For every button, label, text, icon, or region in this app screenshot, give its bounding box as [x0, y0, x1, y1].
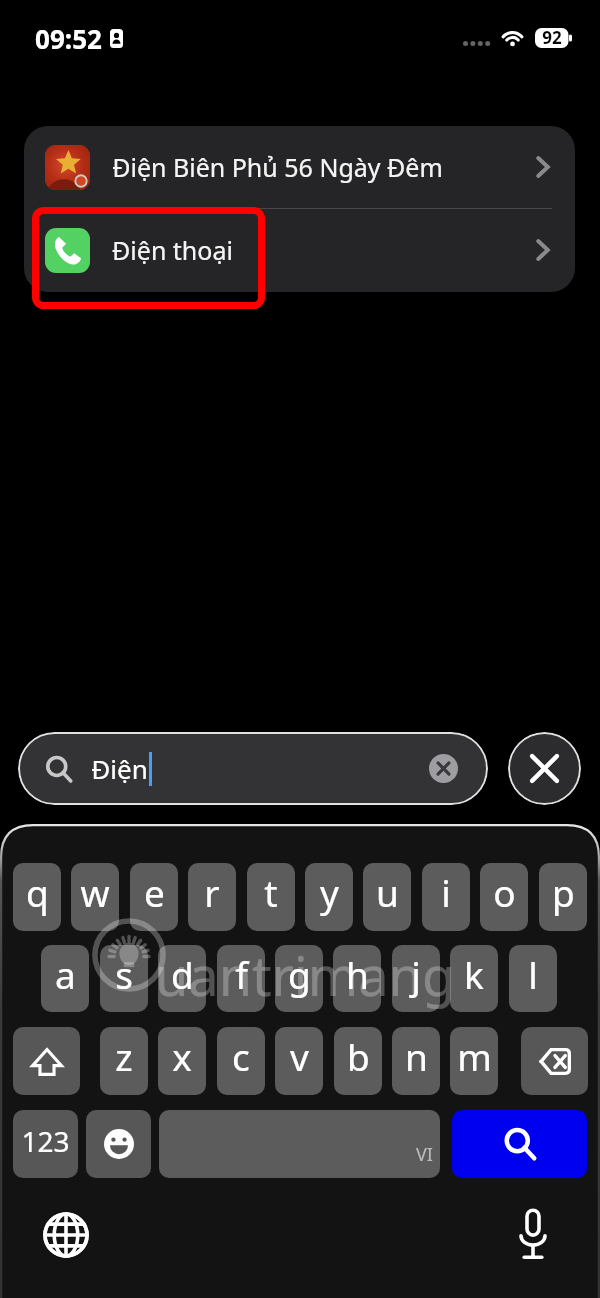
button[interactable]: s — [100, 945, 148, 1012]
button[interactable]: Emoji — [86, 1110, 151, 1178]
button[interactable]: q — [13, 863, 61, 931]
staticText: uantrimang — [155, 938, 456, 1012]
staticText: z — [115, 1031, 133, 1081]
staticText: r — [204, 867, 220, 917]
button[interactable]: Change language — [43, 1212, 89, 1258]
other: Backspace — [539, 1048, 571, 1075]
button[interactable]: Search — [452, 1110, 587, 1178]
button[interactable]: j — [392, 945, 440, 1012]
button[interactable]: k — [450, 945, 498, 1012]
staticText: l — [528, 949, 538, 999]
button[interactable]: x — [158, 1027, 206, 1095]
button[interactable]: Voice input — [513, 1207, 553, 1261]
button[interactable]: z — [100, 1027, 148, 1095]
staticText: g — [288, 949, 311, 999]
button[interactable]: a — [41, 945, 89, 1012]
staticText: k — [464, 949, 484, 999]
button[interactable]: Điện Biên Phủ 56 Ngày Đêm — [24, 126, 575, 208]
button[interactable]: 123 — [13, 1110, 78, 1178]
staticText: d — [171, 949, 194, 999]
button[interactable]: c — [217, 1027, 265, 1095]
button[interactable]: n — [392, 1027, 440, 1095]
button[interactable]: i — [422, 863, 470, 931]
staticText: x — [172, 1031, 192, 1081]
button[interactable]: l — [509, 945, 557, 1012]
button[interactable]: f — [217, 945, 265, 1012]
staticText: p — [552, 867, 575, 917]
other: Emoji — [104, 1129, 134, 1159]
staticText: u — [376, 867, 399, 917]
button[interactable]: Close search — [508, 732, 581, 805]
staticText: s — [115, 949, 133, 999]
button[interactable]: Space — [159, 1110, 440, 1178]
button[interactable]: h — [333, 945, 381, 1012]
button[interactable]: Điện — [18, 732, 488, 805]
staticText: VI — [416, 1142, 433, 1167]
button[interactable]: b — [334, 1027, 382, 1095]
staticText: m — [457, 1031, 492, 1081]
staticText: c — [232, 1031, 250, 1081]
button[interactable]: v — [275, 1027, 323, 1095]
button[interactable]: y — [305, 863, 353, 931]
staticText: 09:52 — [35, 21, 102, 56]
button[interactable]: o — [480, 863, 528, 931]
button[interactable]: t — [247, 863, 295, 931]
staticText: e — [144, 867, 165, 917]
staticText: b — [347, 1031, 370, 1081]
staticText: 92 — [542, 26, 562, 49]
staticText: i — [441, 867, 451, 917]
button[interactable]: Điện thoại — [24, 209, 575, 291]
button[interactable]: g — [275, 945, 323, 1012]
button[interactable]: r — [188, 863, 236, 931]
button[interactable]: Shift — [13, 1027, 80, 1095]
staticText: f — [235, 949, 248, 999]
button[interactable]: w — [71, 863, 119, 931]
staticText: Điện Biên Phủ 56 Ngày Đêm — [112, 150, 443, 184]
staticText: 123 — [21, 1122, 70, 1160]
staticText: q — [26, 867, 49, 917]
staticText: Điện — [91, 751, 148, 786]
button[interactable]: e — [130, 863, 178, 931]
staticText: h — [346, 949, 369, 999]
staticText: y — [320, 867, 339, 917]
staticText: Điện thoại — [112, 233, 233, 267]
button[interactable]: p — [539, 863, 587, 931]
staticText: j — [411, 949, 421, 999]
staticText: t — [264, 867, 278, 917]
staticText: w — [80, 867, 110, 917]
staticText: o — [493, 867, 516, 917]
other: Shift — [31, 1048, 63, 1076]
button[interactable]: u — [363, 863, 411, 931]
staticText: v — [290, 1031, 309, 1081]
button[interactable]: d — [158, 945, 206, 1012]
button[interactable]: Backspace — [521, 1027, 588, 1095]
button[interactable]: Clear text — [429, 754, 458, 783]
staticText: a — [55, 949, 76, 999]
staticText: n — [405, 1031, 428, 1081]
button[interactable]: m — [450, 1027, 498, 1095]
